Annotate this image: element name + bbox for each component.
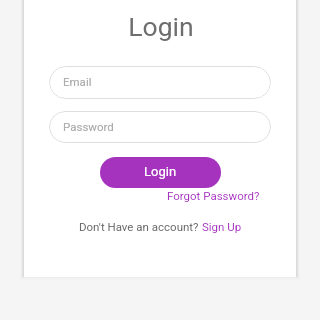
button[interactable]: Password: [49, 111, 271, 143]
staticText: Password: [63, 120, 114, 133]
button[interactable]: Login: [100, 157, 221, 188]
button[interactable]: Forgot Password?: [167, 189, 260, 202]
staticText: Sign Up: [202, 220, 242, 233]
button[interactable]: Email: [49, 66, 271, 99]
button[interactable]: Sign Up: [202, 220, 242, 233]
staticText: Forgot Password?: [167, 189, 260, 202]
staticText: Email: [63, 75, 92, 88]
staticText: Login: [144, 164, 177, 179]
staticText: Login: [25, 11, 297, 42]
staticText: Don't Have an account?: [79, 220, 202, 233]
